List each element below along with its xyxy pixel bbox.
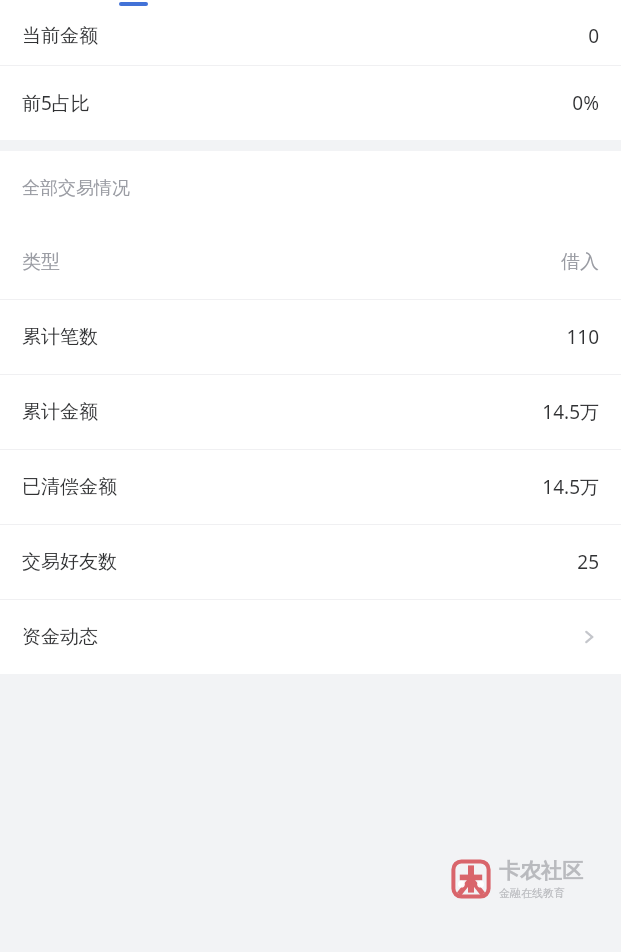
- staticText: 交易好友数: [22, 550, 117, 574]
- staticText: 累计笔数: [22, 325, 98, 349]
- staticText: 金融在线教育: [499, 886, 565, 900]
- button[interactable]: 前5占比: [0, 66, 621, 140]
- button[interactable]: 类型: [0, 225, 621, 299]
- staticText: 0%: [572, 90, 599, 116]
- staticText: 资金动态: [22, 625, 98, 649]
- staticText: 全部交易情况: [22, 177, 130, 200]
- staticText: 类型: [22, 250, 60, 274]
- staticText: 当前金额: [22, 24, 98, 48]
- staticText: 借入: [561, 250, 599, 274]
- staticText: 14.5万: [542, 474, 599, 500]
- button[interactable]: 资金动态: [0, 600, 621, 674]
- staticText: 0: [588, 23, 599, 49]
- button[interactable]: 累计笔数: [0, 300, 621, 374]
- button[interactable]: 已清偿金额: [0, 450, 621, 524]
- staticText: 110: [566, 324, 599, 350]
- staticText: 已清偿金额: [22, 475, 117, 499]
- button[interactable]: 当前金额: [0, 6, 621, 65]
- staticText: 卡农社区: [499, 858, 583, 884]
- staticText: 14.5万: [542, 399, 599, 425]
- button[interactable]: 累计金额: [0, 375, 621, 449]
- button[interactable]: 交易好友数: [0, 525, 621, 599]
- staticText: 累计金额: [22, 400, 98, 424]
- staticText: 25: [577, 549, 599, 575]
- staticText: 前5占比: [22, 90, 90, 116]
